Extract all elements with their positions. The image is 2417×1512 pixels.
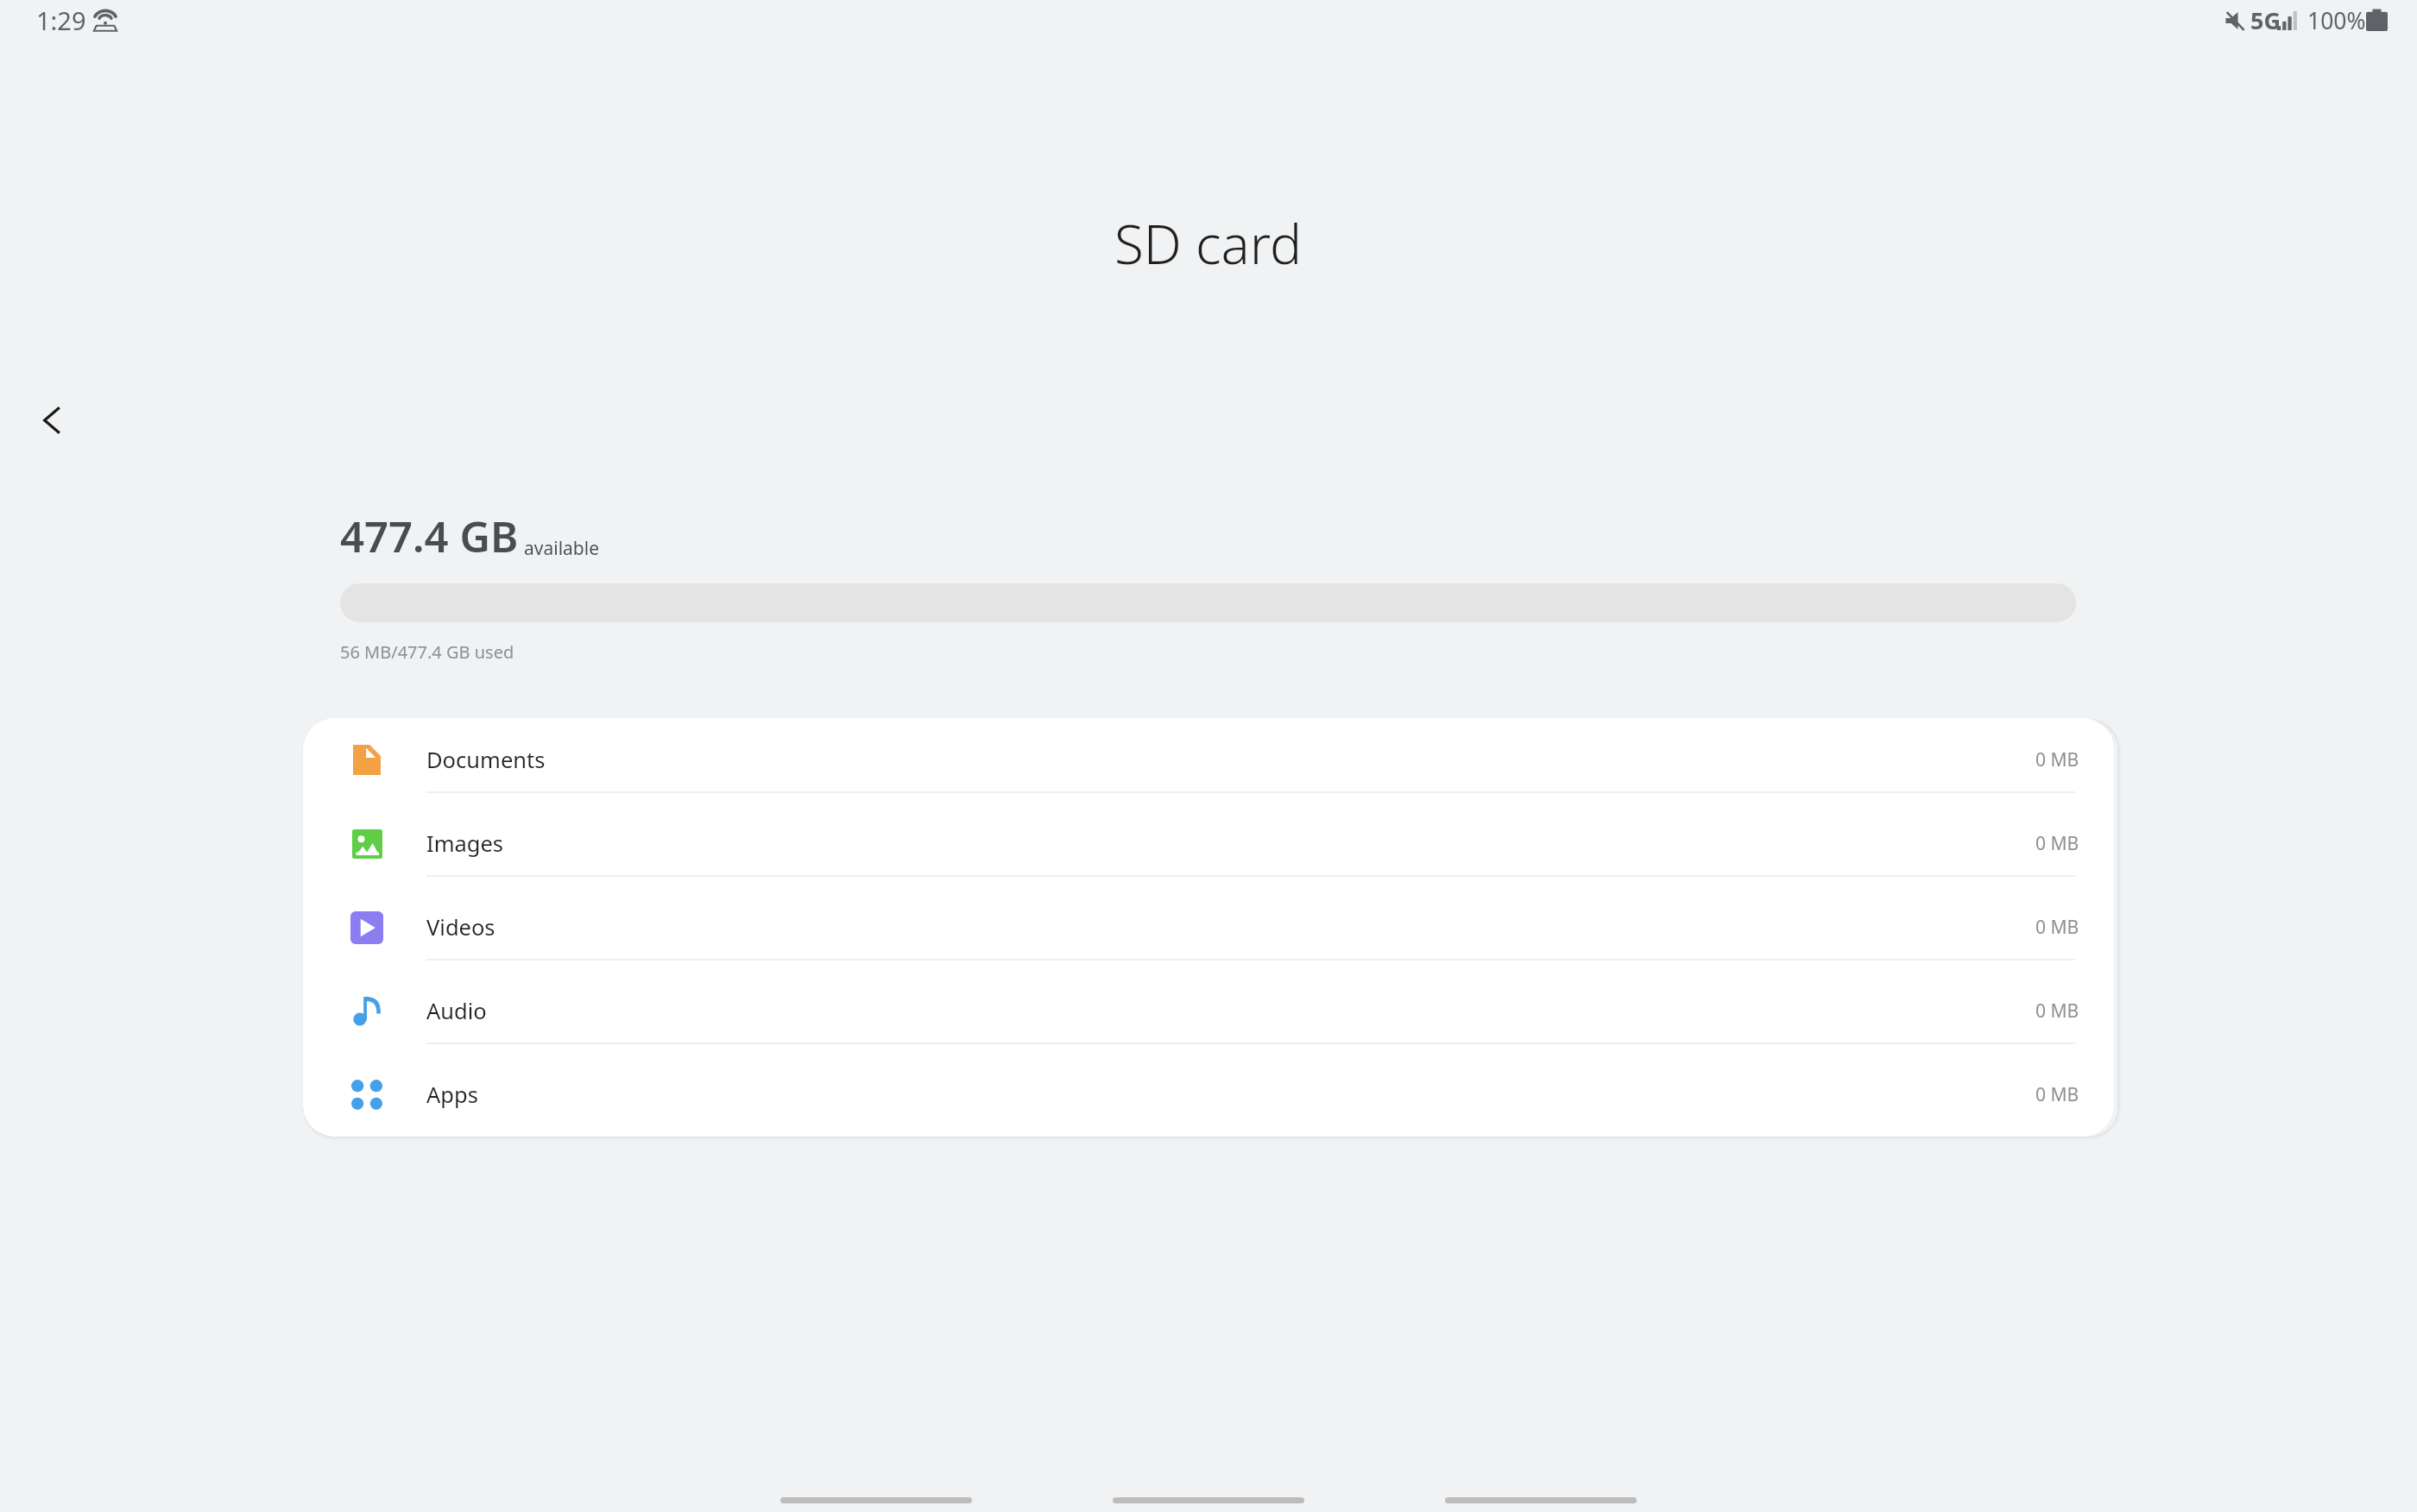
staticText: Videos <box>426 912 495 942</box>
staticText: Documents <box>426 745 546 775</box>
button[interactable]: Back <box>26 394 78 446</box>
button[interactable]: Videos <box>303 885 2114 969</box>
staticText: 477.4 GB <box>340 507 519 565</box>
staticText: 100% <box>2307 5 2366 36</box>
staticText: 1:29 <box>36 3 86 37</box>
button[interactable]: Home <box>1113 1481 1304 1512</box>
staticText: 0 MB <box>2035 1082 2079 1107</box>
button[interactable]: Images <box>303 802 2114 885</box>
staticText: Apps <box>426 1080 478 1110</box>
staticText: available <box>524 536 600 561</box>
staticText: 0 MB <box>2035 999 2079 1024</box>
staticText: 0 MB <box>2035 747 2079 772</box>
staticText: 56 MB/477.4 GB used <box>340 640 514 664</box>
button[interactable]: Recent apps <box>780 1481 972 1512</box>
staticText: 5G <box>2250 4 2281 36</box>
button[interactable]: Documents <box>303 718 2114 802</box>
staticText: Images <box>426 828 504 859</box>
staticText: 0 MB <box>2035 915 2079 940</box>
button[interactable]: Audio <box>303 969 2114 1053</box>
button[interactable]: Apps <box>303 1053 2114 1137</box>
staticText: 0 MB <box>2035 831 2079 856</box>
staticText: Audio <box>426 996 487 1026</box>
staticText: SD card <box>1114 207 1303 280</box>
button[interactable]: Back <box>1445 1481 1637 1512</box>
